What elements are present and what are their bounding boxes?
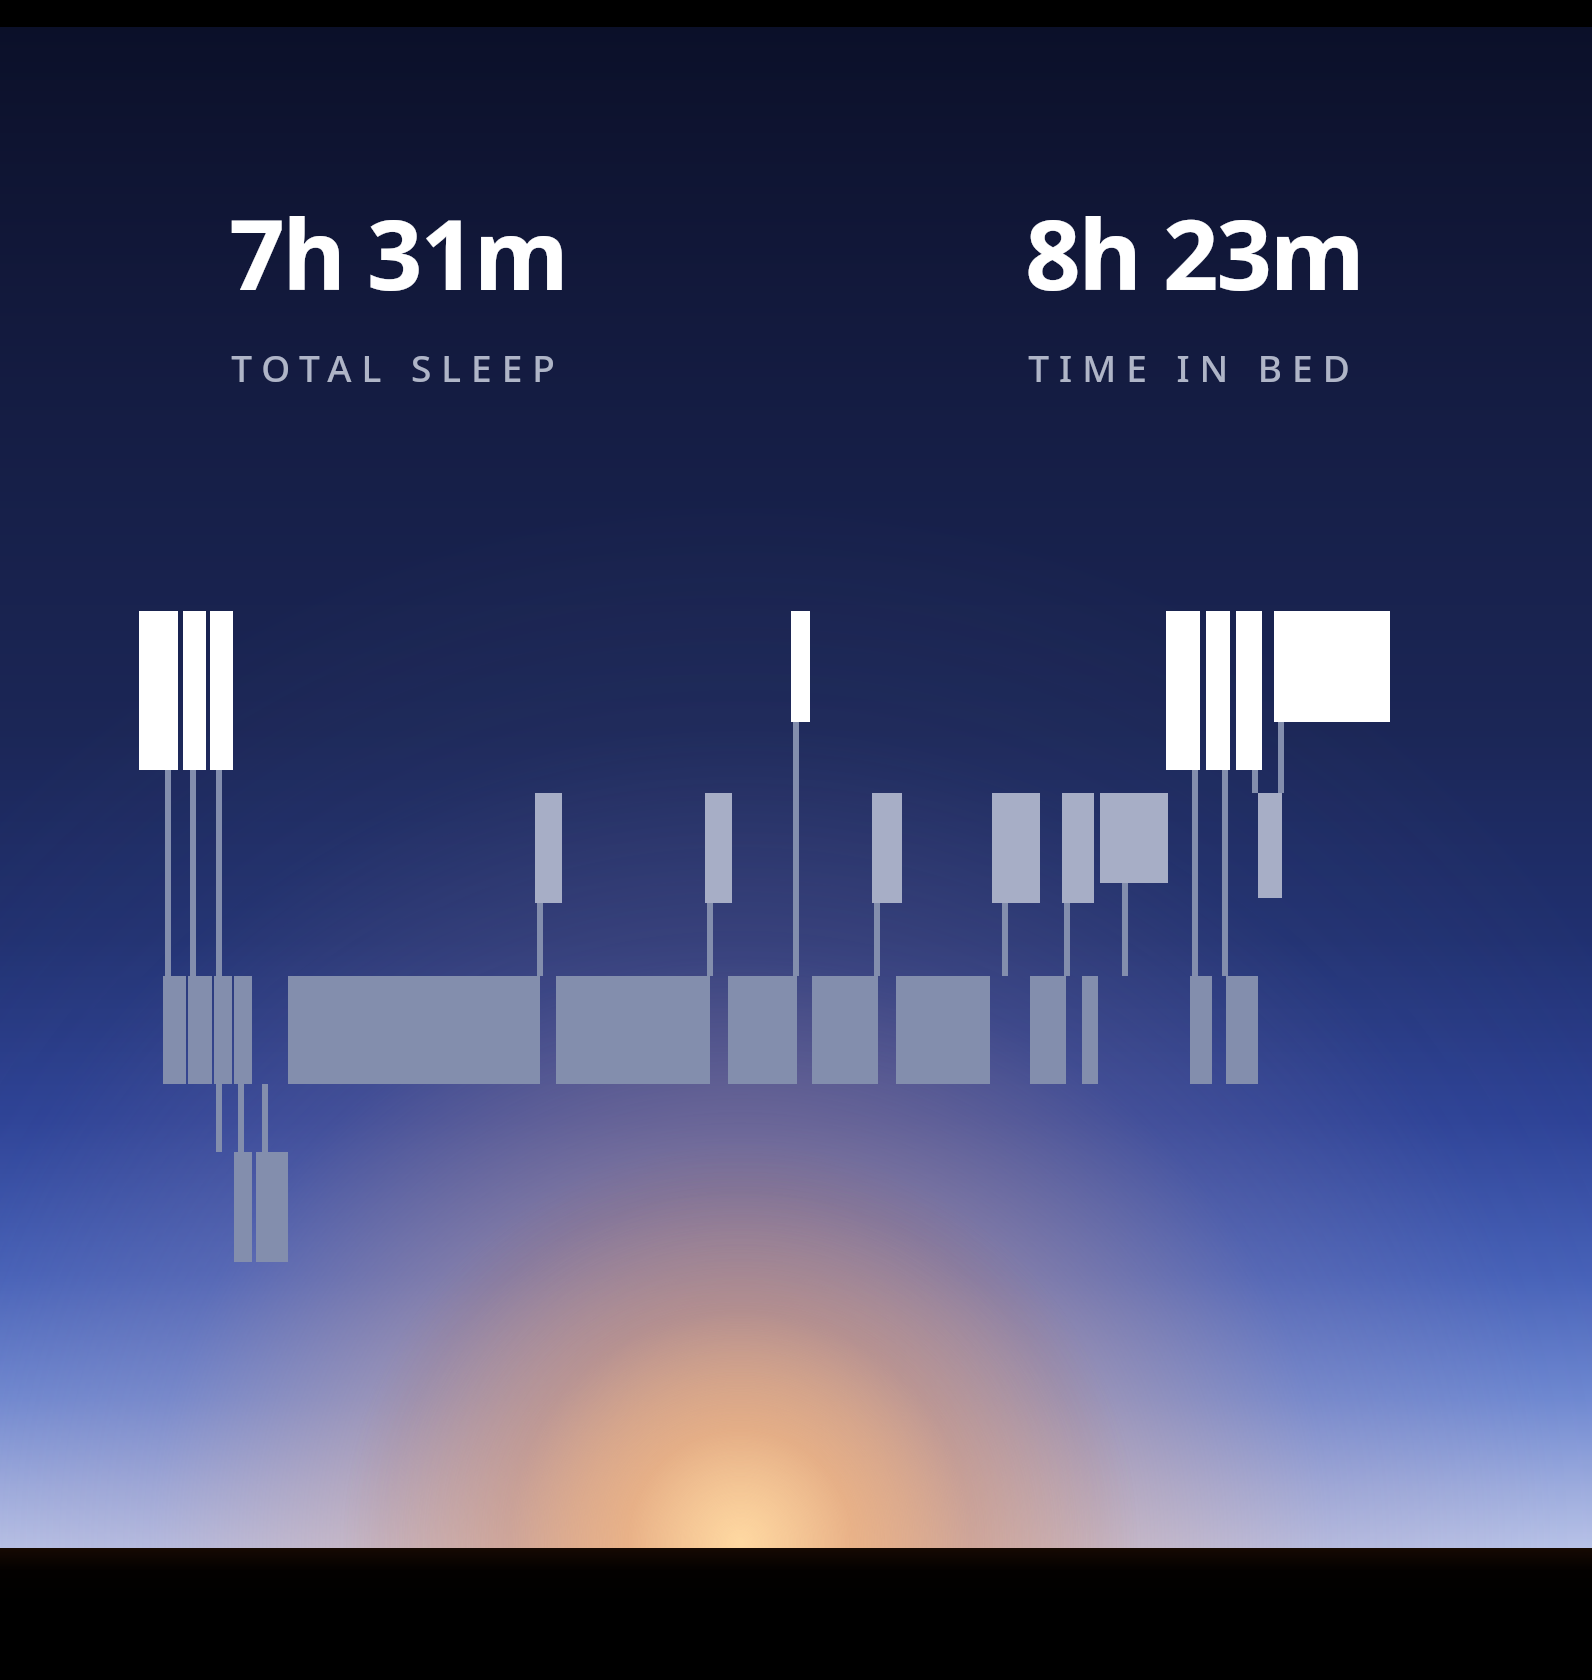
button[interactable]: 7h 31m bbox=[0, 186, 796, 392]
staticText: TOTAL SLEEP bbox=[231, 342, 565, 392]
staticText: TIME IN BED bbox=[1028, 342, 1360, 392]
button[interactable]: 8h 23m bbox=[796, 186, 1592, 392]
button[interactable]: Sleep stages chart bbox=[0, 0, 1592, 1680]
staticText: 8h 23m bbox=[1025, 186, 1363, 318]
staticText: 7h 31m bbox=[229, 186, 567, 318]
